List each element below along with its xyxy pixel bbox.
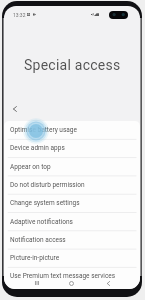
button[interactable]: Do not disturb permission bbox=[4, 176, 140, 194]
button[interactable]: Home bbox=[65, 277, 78, 289]
button[interactable]: Picture-in-picture bbox=[4, 249, 140, 267]
button[interactable]: Change system settings bbox=[4, 194, 140, 212]
staticText: Do not disturb permission bbox=[10, 181, 85, 189]
staticText: Device admin apps bbox=[10, 144, 65, 152]
button[interactable]: Adaptive notifications bbox=[4, 213, 140, 231]
staticText: Change system settings bbox=[10, 199, 80, 207]
button[interactable]: Optimise battery usage bbox=[4, 121, 140, 139]
button[interactable]: Appear on top bbox=[4, 158, 140, 176]
staticText: Special access bbox=[24, 57, 121, 73]
staticText: Picture-in-picture bbox=[10, 254, 60, 262]
staticText: Adaptive notifications bbox=[10, 218, 73, 226]
button[interactable]: Back bbox=[102, 277, 115, 289]
staticText: Notification access bbox=[10, 236, 66, 244]
button[interactable]: Device admin apps bbox=[4, 139, 140, 157]
button[interactable]: Notification access bbox=[4, 231, 140, 249]
staticText: Optimise battery usage bbox=[10, 126, 77, 134]
button[interactable]: Use Premium text message services bbox=[4, 267, 140, 285]
button[interactable]: Navigate up bbox=[8, 102, 21, 115]
staticText: Appear on top bbox=[10, 163, 51, 171]
staticText: 13:32 bbox=[13, 12, 26, 18]
staticText: Use Premium text message services bbox=[10, 272, 116, 280]
button[interactable]: Recent apps bbox=[30, 277, 43, 289]
